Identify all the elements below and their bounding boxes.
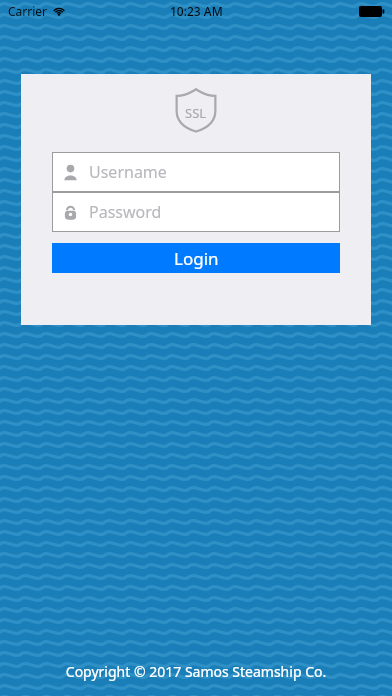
button[interactable]: Login <box>52 243 340 273</box>
button[interactable]: Password <box>52 192 340 232</box>
staticText: Username <box>89 161 167 183</box>
staticText: Login <box>174 247 219 270</box>
staticText: SSL <box>185 104 207 122</box>
staticText: Copyright © 2017 Samos Steamship Co. <box>0 662 392 681</box>
staticText: Carrier <box>8 3 48 19</box>
staticText: Password <box>89 201 162 223</box>
button[interactable]: Username <box>52 152 340 192</box>
staticText: 10:23 AM <box>170 3 223 19</box>
